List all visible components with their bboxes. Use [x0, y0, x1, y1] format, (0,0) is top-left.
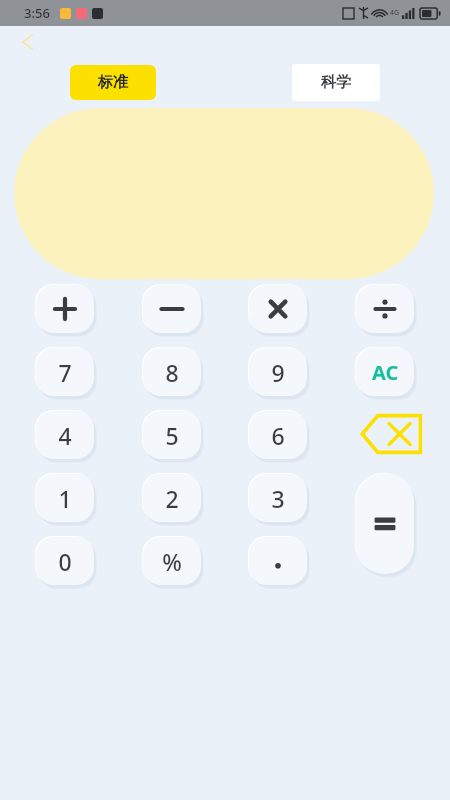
- button[interactable]: 6: [249, 411, 307, 459]
- button[interactable]: Decimal point: [249, 537, 307, 585]
- button[interactable]: Backspace: [356, 411, 426, 457]
- staticText: 1: [58, 483, 72, 514]
- staticText: 6: [271, 420, 285, 451]
- button[interactable]: 标准: [70, 65, 156, 100]
- button[interactable]: Divide: [356, 285, 414, 333]
- staticText: 标准: [98, 73, 128, 92]
- button[interactable]: 8: [143, 348, 201, 396]
- staticText: 7: [58, 357, 72, 388]
- button[interactable]: Equals: [356, 474, 414, 574]
- button[interactable]: 4: [36, 411, 94, 459]
- staticText: 5: [165, 420, 179, 451]
- button[interactable]: AC: [356, 348, 414, 396]
- staticText: 4: [58, 420, 72, 451]
- staticText: %: [162, 546, 182, 577]
- staticText: 3:56: [24, 4, 50, 22]
- button[interactable]: 3: [249, 474, 307, 522]
- button[interactable]: Minus: [143, 285, 201, 333]
- button[interactable]: Plus: [36, 285, 94, 333]
- button[interactable]: 科学: [292, 64, 380, 101]
- staticText: 0: [58, 546, 72, 577]
- staticText: 3: [271, 483, 285, 514]
- button[interactable]: 9: [249, 348, 307, 396]
- button[interactable]: 5: [143, 411, 201, 459]
- button[interactable]: 2: [143, 474, 201, 522]
- staticText: 4G: [390, 8, 400, 18]
- button[interactable]: 7: [36, 348, 94, 396]
- button[interactable]: 1: [36, 474, 94, 522]
- staticText: 科学: [321, 73, 351, 92]
- staticText: 9: [271, 357, 285, 388]
- staticText: 2: [165, 483, 179, 514]
- button[interactable]: 0: [36, 537, 94, 585]
- staticText: AC: [372, 359, 399, 386]
- button[interactable]: Multiply: [249, 285, 307, 333]
- staticText: 8: [165, 357, 179, 388]
- button[interactable]: %: [143, 537, 201, 585]
- button[interactable]: Back: [16, 31, 38, 53]
- button[interactable]: [14, 108, 434, 279]
